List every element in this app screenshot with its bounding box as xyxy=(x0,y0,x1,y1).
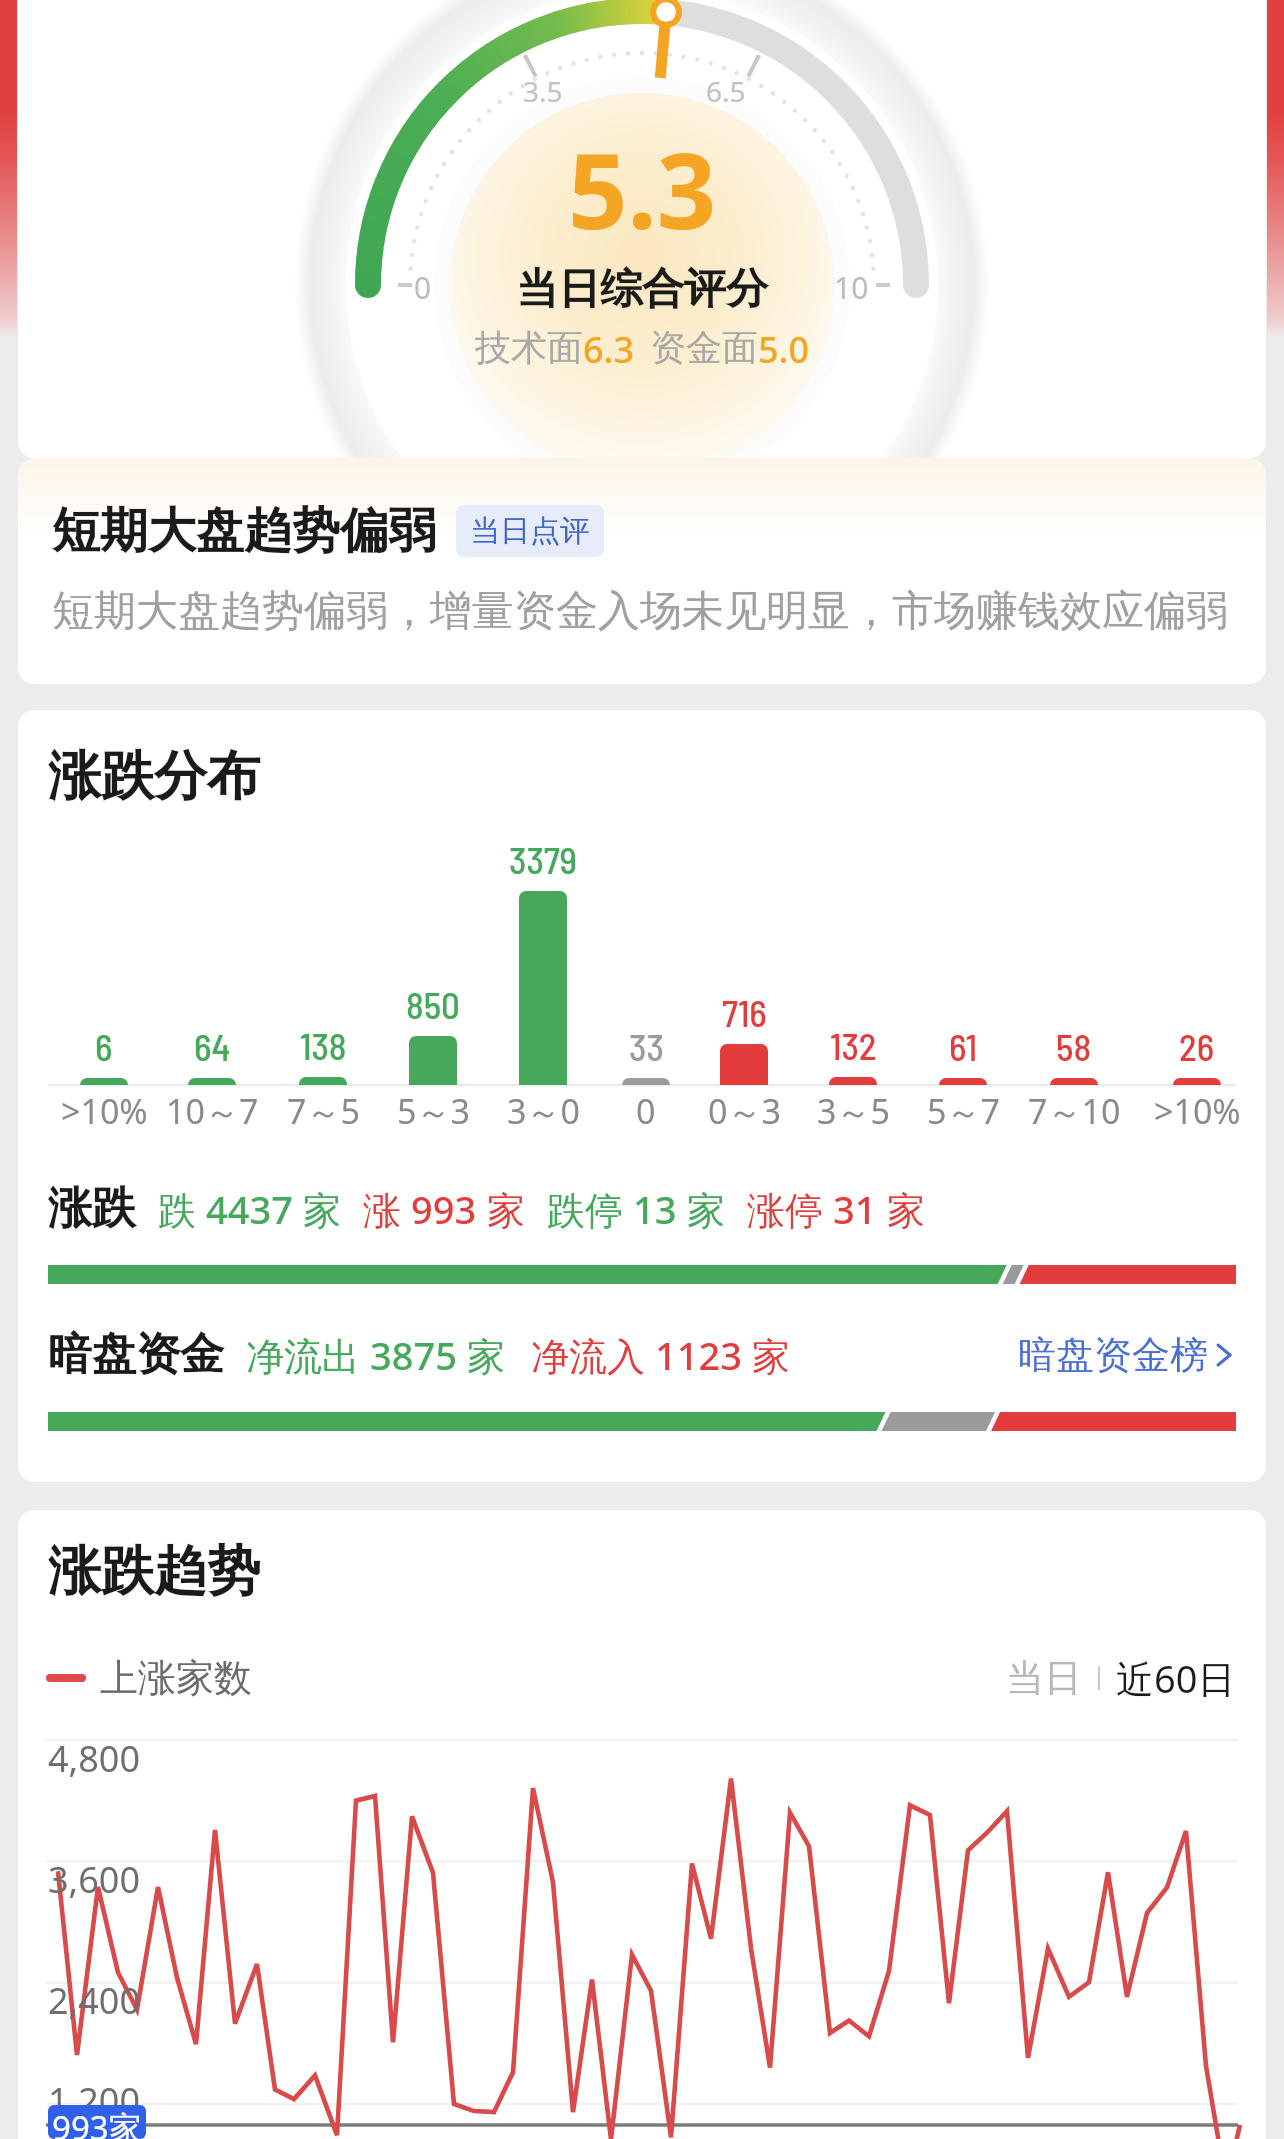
staticText: 家 xyxy=(742,1329,790,1381)
button[interactable]: 当日 xyxy=(1006,1654,1082,1702)
staticText: 1123 xyxy=(655,1329,742,1381)
staticText: 技术面 xyxy=(475,325,583,370)
staticText: 当日综合评分 xyxy=(516,263,768,316)
staticText: 涨跌分布 xyxy=(48,743,260,810)
staticText: 7～10 xyxy=(1028,1088,1121,1134)
staticText: 净流入 xyxy=(531,1329,655,1381)
staticText: 33 xyxy=(629,1024,664,1068)
staticText: 3379 xyxy=(509,837,577,881)
staticText: 138 xyxy=(300,1023,347,1067)
staticText: 3875 xyxy=(370,1329,457,1381)
staticText: 家 xyxy=(877,1183,925,1235)
staticText: 5.3 xyxy=(568,118,717,260)
staticText: 3～0 xyxy=(507,1088,580,1134)
staticText: 0～3 xyxy=(708,1088,781,1134)
staticText: 涨跌趋势 xyxy=(48,1538,260,1605)
staticText: 3,600 xyxy=(48,1855,141,1904)
staticText: 4,800 xyxy=(48,1734,141,1783)
staticText: 5～7 xyxy=(927,1088,1000,1134)
staticText: 10 xyxy=(834,267,869,308)
staticText: 暗盘资金 xyxy=(48,1327,224,1382)
staticText: 7～5 xyxy=(287,1088,360,1134)
button[interactable]: 短期大盘趋势偏弱 xyxy=(18,458,1266,684)
staticText: 跌 xyxy=(158,1183,206,1235)
staticText: 跌停 xyxy=(547,1183,633,1235)
staticText: 暗盘资金榜 xyxy=(1018,1331,1208,1379)
staticText: 26 xyxy=(1179,1024,1215,1068)
staticText: 涨跌 xyxy=(48,1181,136,1236)
staticText: 0 xyxy=(636,1088,656,1134)
staticText: 短期大盘趋势偏弱 xyxy=(52,501,436,561)
staticText: 5.0 xyxy=(758,325,809,374)
staticText: >10% xyxy=(61,1088,148,1134)
staticText: 短期大盘趋势偏弱，增量资金入场未见明显，市场赚钱效应偏弱 xyxy=(52,585,1228,638)
staticText: 家 xyxy=(457,1329,505,1381)
staticText: >10% xyxy=(1154,1088,1241,1134)
staticText: 13 xyxy=(633,1183,677,1235)
staticText: 近60日 xyxy=(1116,1652,1236,1704)
staticText: 家 xyxy=(477,1183,525,1235)
staticText: 0 xyxy=(414,267,432,308)
staticText: 31 xyxy=(833,1183,877,1235)
staticText: 3.5 xyxy=(523,72,563,110)
staticText: 132 xyxy=(830,1023,877,1067)
staticText: 6 xyxy=(95,1024,113,1068)
staticText: 家 xyxy=(677,1183,725,1235)
staticText: 资金面 xyxy=(650,325,758,370)
staticText: 6.5 xyxy=(706,72,746,110)
staticText: 当日点评 xyxy=(470,512,590,550)
staticText: 58 xyxy=(1056,1024,1092,1068)
button[interactable]: 暗盘资金榜 xyxy=(1018,1331,1236,1379)
staticText: 2,400 xyxy=(48,1976,141,2025)
staticText: 涨 xyxy=(363,1183,411,1235)
staticText: 当日 xyxy=(1006,1654,1082,1702)
staticText: 850 xyxy=(406,982,460,1026)
staticText: 993家 xyxy=(52,2105,142,2139)
staticText: 993 xyxy=(411,1183,477,1235)
staticText: 6.3 xyxy=(583,325,634,374)
staticText: 716 xyxy=(722,990,767,1034)
staticText: 家 xyxy=(293,1183,341,1235)
staticText: 净流出 xyxy=(246,1329,370,1381)
staticText: 涨停 xyxy=(747,1183,833,1235)
staticText: 上涨家数 xyxy=(100,1654,252,1702)
staticText: 4437 xyxy=(206,1183,293,1235)
staticText: 61 xyxy=(949,1024,978,1068)
button[interactable]: 近60日 xyxy=(1116,1652,1236,1704)
staticText: 64 xyxy=(194,1024,231,1068)
staticText: 1,200 xyxy=(48,2076,141,2125)
staticText: 3～5 xyxy=(817,1088,890,1134)
staticText: 10～7 xyxy=(166,1088,259,1134)
staticText: 5～3 xyxy=(397,1088,470,1134)
